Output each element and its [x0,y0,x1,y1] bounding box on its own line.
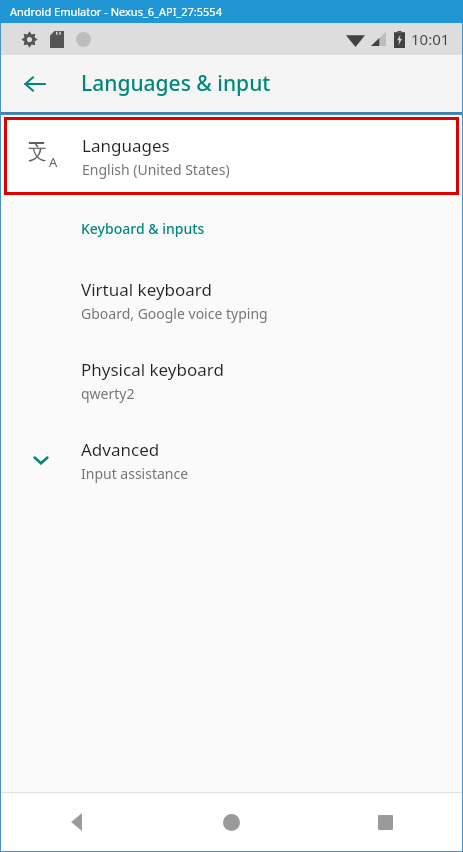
staticText: qwerty2 [81,384,135,403]
staticText: Virtual keyboard [81,278,213,301]
button[interactable]: 文 [4,117,459,195]
staticText: Keyboard & inputs [81,219,205,238]
staticText: Android Emulator - Nexus_6_API_27:5554 [10,4,222,19]
button[interactable]: Physical keyboard [1,340,462,420]
button[interactable]: Virtual keyboard [1,260,462,340]
button[interactable]: Back [15,64,55,104]
button[interactable]: Advanced [1,420,462,500]
staticText: Input assistance [81,464,189,483]
button[interactable]: Home [154,793,308,851]
staticText: Languages [82,134,170,157]
staticText: Physical keyboard [81,358,224,381]
staticText: 文 [28,141,47,165]
staticText: Languages & input [81,69,271,98]
staticText: A [49,153,58,171]
staticText: English (United States) [82,160,230,179]
button[interactable]: Back [1,793,154,851]
button[interactable]: Recent apps [308,793,462,851]
staticText: Advanced [81,438,160,461]
staticText: 10:01 [411,29,450,49]
staticText: Gboard, Google voice typing [81,304,268,323]
